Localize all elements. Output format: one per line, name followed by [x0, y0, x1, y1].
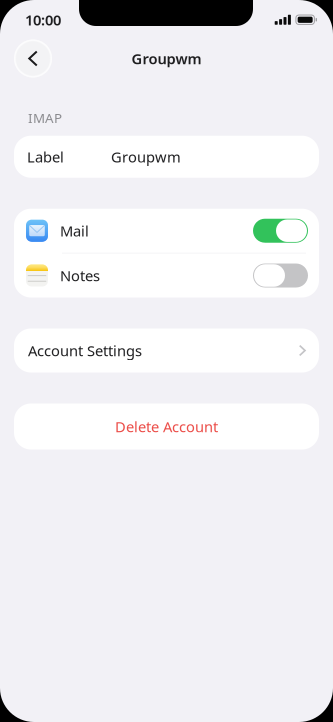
staticText: Groupwm: [111, 147, 181, 166]
staticText: Delete Account: [115, 417, 218, 436]
button[interactable]: Back: [14, 39, 52, 77]
staticText: 10:00: [25, 10, 61, 29]
staticText: Groupwm: [131, 49, 201, 68]
staticText: Account Settings: [28, 341, 142, 360]
staticText: Mail: [60, 221, 89, 240]
staticText: Notes: [60, 266, 100, 285]
button[interactable]: Account Settings: [0, 328, 333, 372]
staticText: Label: [27, 147, 64, 166]
button[interactable]: Delete Account: [0, 403, 333, 449]
staticText: IMAP: [28, 109, 62, 127]
